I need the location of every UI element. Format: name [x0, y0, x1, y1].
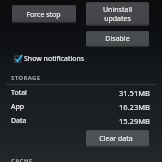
staticText: App	[11, 102, 25, 112]
staticText: CACHE	[11, 157, 33, 162]
staticText: Force stop	[26, 10, 61, 20]
staticText: Data	[11, 116, 27, 126]
staticText: Total	[11, 88, 27, 98]
button[interactable]: Force stop	[12, 5, 76, 23]
button[interactable]: Uninstall updates	[86, 2, 149, 26]
staticText: Show notifications	[24, 54, 85, 64]
button[interactable]: Disable	[86, 31, 149, 47]
staticText: Clear data	[99, 134, 133, 144]
button[interactable]: App	[0, 100, 162, 114]
button[interactable]: Total	[0, 86, 162, 100]
button[interactable]: Clear data	[86, 130, 149, 147]
staticText: 16.23MB	[119, 102, 150, 112]
staticText: STORAGE	[11, 74, 41, 82]
button[interactable]: Data	[0, 114, 162, 128]
staticText: Uninstall updates	[103, 5, 132, 23]
staticText: Disable	[105, 34, 130, 44]
staticText: 31.51MB	[119, 88, 150, 98]
button[interactable]: Show notifications	[0, 52, 162, 66]
staticText: 15.29MB	[119, 116, 150, 126]
